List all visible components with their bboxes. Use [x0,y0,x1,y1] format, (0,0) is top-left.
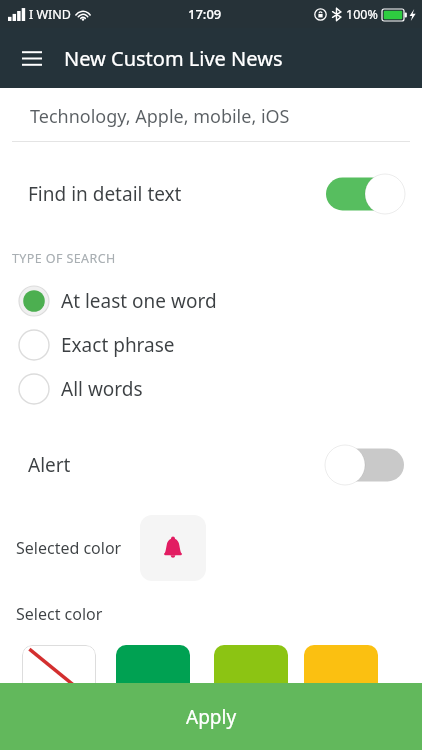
button[interactable]: Alert [0,437,422,493]
button[interactable]: No color [22,645,96,697]
button[interactable]: Toggle on [326,174,404,214]
staticText: Select color [16,603,103,625]
button[interactable]: Toggle off [326,445,404,485]
staticText: At least one word [61,288,217,314]
staticText: 17:09 [188,5,222,23]
button[interactable]: Selected alert color [140,515,206,581]
button[interactable]: At least one word [0,279,422,323]
button[interactable]: All words [0,367,422,411]
staticText: Selected color [16,537,122,559]
staticText: All words [61,376,143,402]
button[interactable]: Open navigation menu [12,38,52,78]
staticText: Find in detail text [28,181,182,207]
staticText: TYPE OF SEARCH [12,250,116,267]
staticText: 100% [346,6,378,23]
staticText: Apply [186,704,237,730]
staticText: Exact phrase [61,332,175,358]
button[interactable]: Choose color [214,645,288,697]
button[interactable]: Choose color [116,645,190,697]
button[interactable]: Choose color [304,645,378,697]
button[interactable]: Technology, Apple, mobile, iOS [30,104,290,129]
staticText: Alert [28,452,71,478]
staticText: New Custom Live News [64,45,283,72]
button[interactable]: Find in detail text [0,165,422,223]
button[interactable]: Exact phrase [0,323,422,367]
staticText: I WIND [29,6,71,23]
button[interactable]: Apply [0,683,422,750]
